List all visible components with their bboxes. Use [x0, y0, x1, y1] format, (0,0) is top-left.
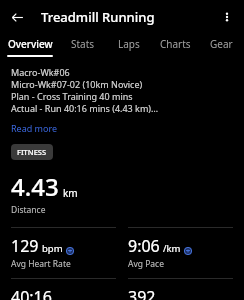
staticText: 392 [128, 286, 156, 300]
staticText: Avg Heart Rate [11, 258, 71, 270]
button[interactable]: FITNESS [11, 144, 53, 160]
button[interactable]: Back [0, 0, 34, 34]
staticText: Treadmill Running [41, 8, 155, 26]
button[interactable]: Laps [106, 34, 152, 58]
button[interactable]: Charts [152, 34, 198, 58]
staticText: Macro-Wk#06 [11, 66, 70, 78]
staticText: Micro-Wk#07-02 (10km Novice) [11, 78, 143, 90]
staticText: bpm [42, 242, 63, 255]
staticText: Stats [71, 37, 95, 51]
staticText: Gear [210, 37, 233, 51]
staticText: Plan - Cross Training 40 mins [11, 90, 133, 102]
button[interactable]: 129 [11, 235, 116, 270]
button[interactable]: 9:06 [128, 235, 233, 270]
button[interactable]: Stats [59, 34, 106, 58]
button[interactable]: 40:16 [11, 286, 116, 300]
staticText: Actual - Run 40:16 mins (4.43 km)… [11, 102, 159, 114]
staticText: FITNESS [17, 147, 47, 157]
staticText: km [63, 186, 78, 200]
staticText: Avg Pace [128, 258, 164, 270]
button[interactable]: Gear [198, 34, 244, 58]
staticText: Distance [11, 204, 46, 216]
staticText: 9:06 [128, 235, 160, 257]
staticText: 40:16 [11, 286, 52, 300]
button[interactable]: Overview [0, 34, 59, 58]
staticText: Read more [11, 122, 58, 134]
staticText: Laps [118, 37, 140, 51]
button[interactable]: More options [210, 0, 244, 34]
staticText: Charts [160, 37, 191, 51]
staticText: 4.43 [11, 170, 59, 203]
button[interactable]: Read more [11, 122, 58, 134]
button[interactable]: 392 [128, 286, 233, 300]
staticText: /km [163, 242, 181, 255]
staticText: 129 [11, 235, 39, 257]
staticText: Overview [8, 37, 53, 51]
